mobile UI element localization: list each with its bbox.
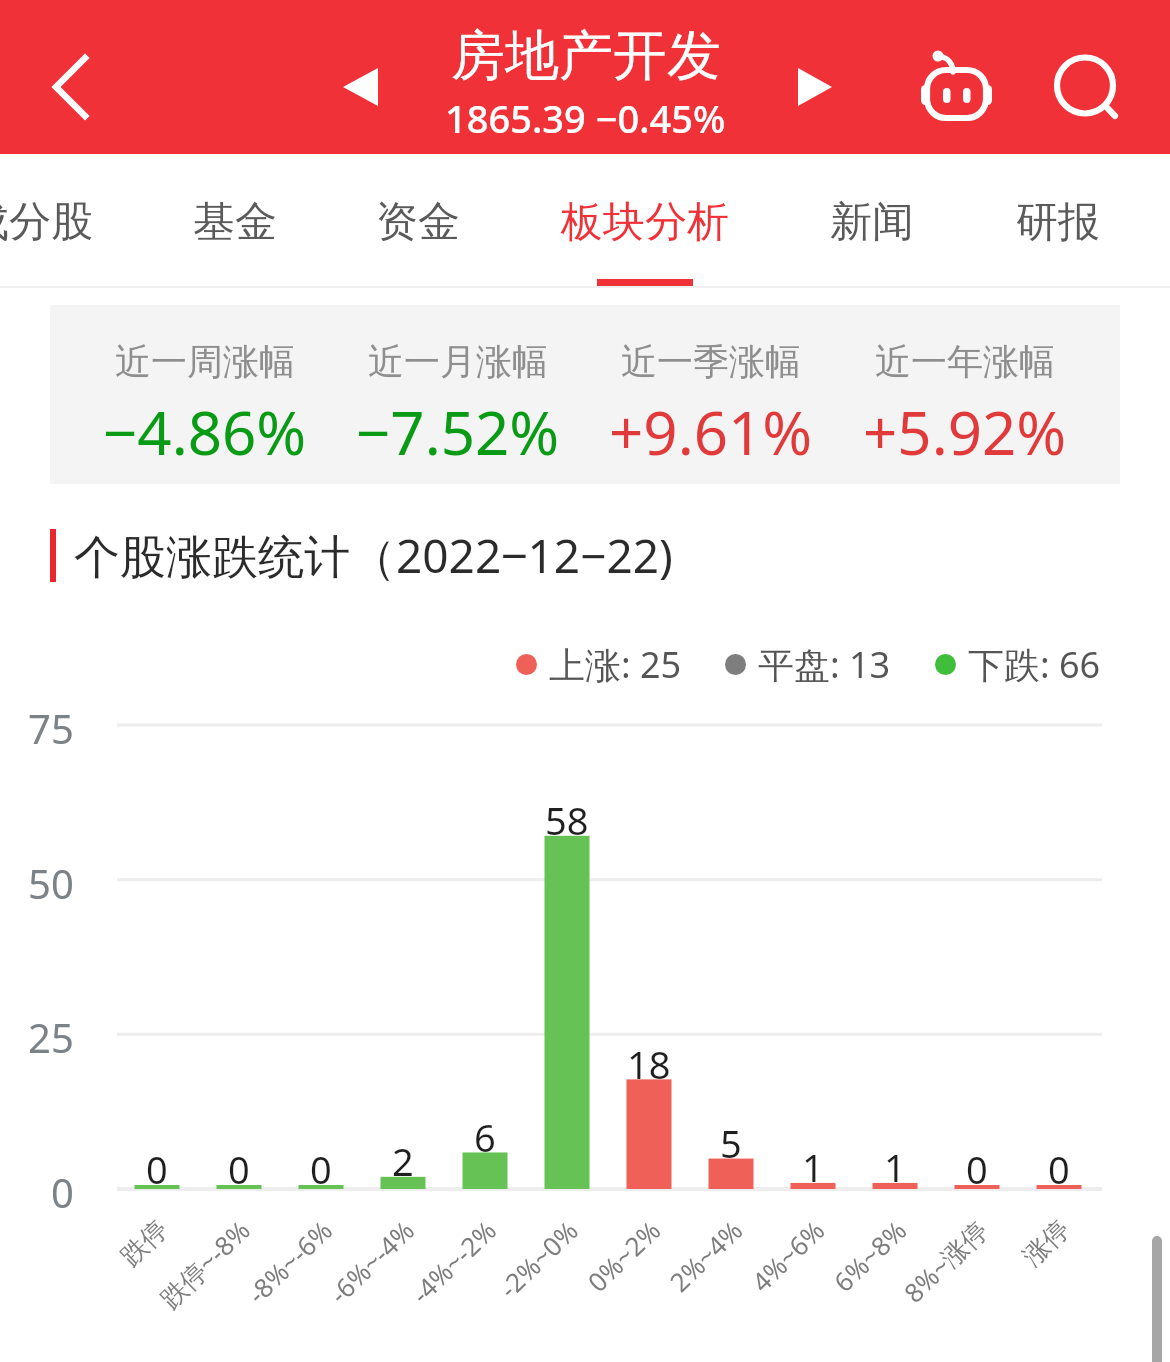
button[interactable]: 下跌: 66 — [935, 640, 1101, 689]
button[interactable]: 成分股 — [0, 154, 111, 284]
staticText: 板块分析 — [561, 196, 729, 249]
staticText: 1865.39 −0.45% — [445, 92, 726, 144]
staticText: 近一月涨幅 — [368, 339, 548, 384]
button[interactable]: 近一年涨幅 — [838, 317, 1092, 473]
button[interactable]: 近一月涨幅 — [331, 317, 584, 473]
staticText: +5.92% — [863, 391, 1067, 473]
staticText: −4.86% — [103, 391, 307, 473]
staticText: 平盘: 13 — [758, 640, 891, 689]
button[interactable]: Search — [1032, 28, 1138, 134]
button[interactable]: 基金 — [175, 154, 295, 284]
staticText: 房地产开发 — [451, 22, 721, 90]
button[interactable]: 上涨: 25 — [516, 640, 682, 689]
staticText: 成分股 — [0, 196, 93, 249]
staticText: 研报 — [1016, 196, 1100, 249]
staticText: 新闻 — [830, 196, 914, 249]
button[interactable]: 新闻 — [812, 154, 932, 284]
button[interactable]: Previous sector — [320, 42, 400, 132]
staticText: 上涨: 25 — [549, 640, 682, 689]
button[interactable]: 资金 — [358, 154, 478, 284]
button[interactable]: 板块分析 — [543, 154, 747, 284]
staticText: −7.52% — [356, 391, 560, 473]
staticText: 近一周涨幅 — [115, 339, 295, 384]
staticText: 近一季涨幅 — [621, 339, 801, 384]
staticText: +9.61% — [609, 391, 813, 473]
button[interactable]: 平盘: 13 — [725, 640, 891, 689]
button[interactable]: 研报 — [998, 154, 1118, 284]
staticText: 基金 — [193, 196, 277, 249]
button[interactable]: Next sector — [778, 42, 858, 132]
staticText: 个股涨跌统计（2022‒12−22) — [74, 524, 673, 587]
button[interactable]: 近一周涨幅 — [78, 317, 331, 473]
button[interactable]: 近一季涨幅 — [584, 317, 838, 473]
staticText: 近一年涨幅 — [875, 339, 1055, 384]
button[interactable]: Back — [26, 32, 136, 142]
staticText: 下跌: 66 — [968, 640, 1101, 689]
button[interactable]: AI assistant — [905, 25, 1011, 131]
staticText: 资金 — [376, 196, 460, 249]
